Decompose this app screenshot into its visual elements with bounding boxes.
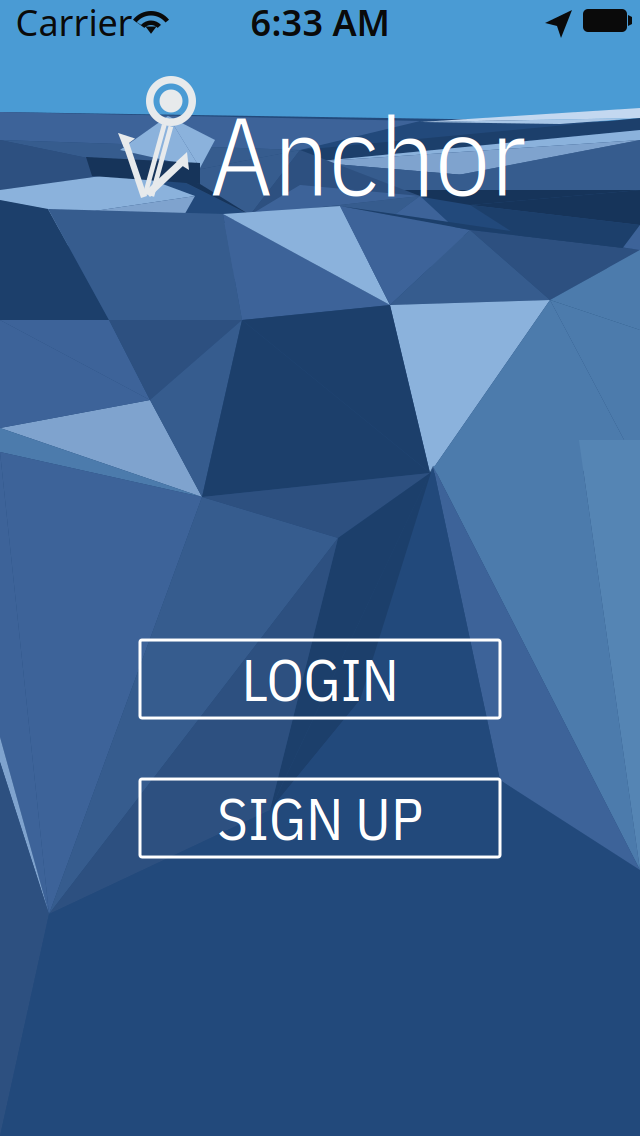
staticText: Carrier: [15, 0, 132, 46]
staticText: Anchor: [210, 82, 526, 226]
button[interactable]: SIGN UP: [140, 779, 500, 857]
staticText: LOGIN: [241, 641, 398, 717]
button[interactable]: LOGIN: [140, 640, 500, 718]
staticText: 6:33 AM: [250, 0, 389, 46]
staticText: SIGN UP: [217, 780, 423, 856]
